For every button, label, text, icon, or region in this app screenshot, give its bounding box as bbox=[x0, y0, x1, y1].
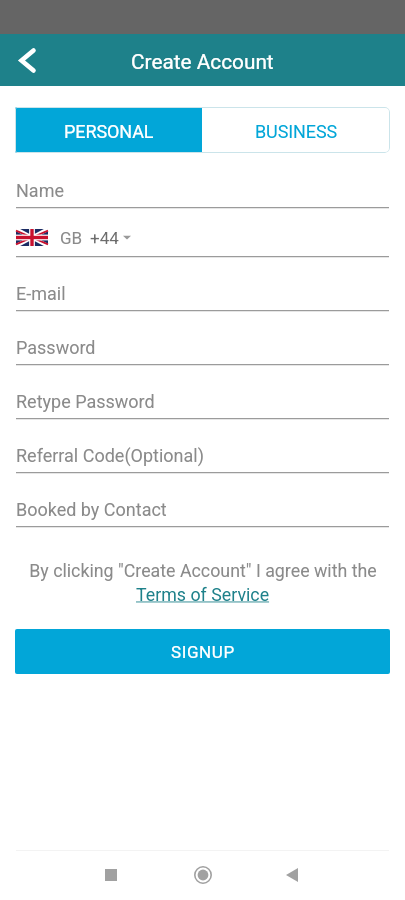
staticText: Retype Password bbox=[16, 391, 155, 412]
staticText: Name bbox=[16, 180, 64, 201]
button[interactable]: Referral Code(Optional) bbox=[16, 420, 389, 474]
staticText: GB bbox=[60, 228, 83, 248]
button[interactable]: GB bbox=[16, 209, 389, 258]
button[interactable]: PERSONAL bbox=[15, 107, 202, 153]
button[interactable]: Retype Password bbox=[16, 366, 389, 420]
button[interactable]: Password bbox=[16, 312, 389, 366]
button[interactable]: Terms of Service bbox=[136, 584, 270, 605]
button[interactable]: BUSINESS bbox=[202, 107, 390, 153]
staticText: Terms of Service bbox=[136, 584, 270, 605]
staticText: +44 bbox=[90, 228, 119, 248]
button[interactable]: Home bbox=[179, 851, 227, 899]
staticText: Create Account bbox=[131, 50, 274, 74]
staticText: SIGNUP bbox=[171, 642, 235, 662]
button[interactable]: Name bbox=[16, 155, 389, 209]
staticText: By clicking "Create Account" I agree wit… bbox=[29, 560, 377, 581]
staticText: Referral Code(Optional) bbox=[16, 445, 204, 466]
button[interactable]: E-mail bbox=[16, 258, 389, 312]
staticText: E-mail bbox=[16, 283, 66, 304]
staticText: BUSINESS bbox=[255, 121, 338, 142]
staticText: Password bbox=[16, 337, 96, 358]
staticText: Booked by Contact bbox=[16, 499, 167, 520]
button[interactable]: Recent apps bbox=[87, 851, 135, 899]
staticText: PERSONAL bbox=[64, 121, 154, 142]
button[interactable]: Back bbox=[3, 36, 51, 84]
button[interactable]: Booked by Contact bbox=[16, 474, 389, 528]
button[interactable]: Back bbox=[268, 851, 316, 899]
button[interactable]: SIGNUP bbox=[15, 629, 390, 674]
